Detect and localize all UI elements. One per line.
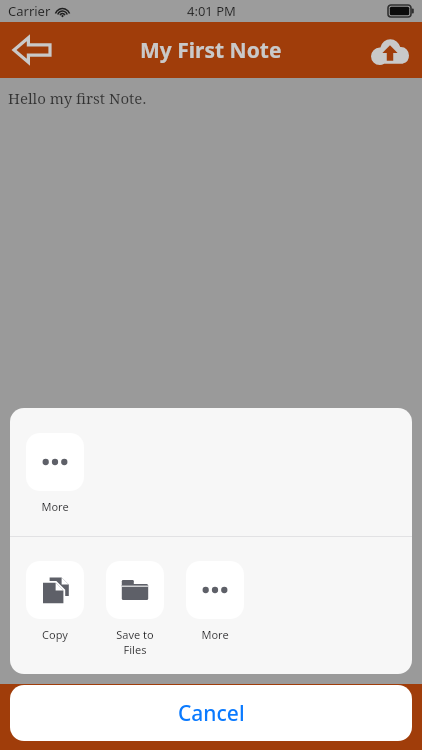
staticText: More [41,499,69,514]
button[interactable]: Copy [26,561,84,642]
staticText: Copy [42,627,68,642]
button[interactable]: Cancel [10,685,412,741]
staticText: Cancel [178,699,245,728]
button[interactable]: Upload [366,26,414,74]
button[interactable]: Save to Files [106,561,164,657]
staticText: 4:01 PM [187,2,236,20]
staticText: Hello my first Note. [8,88,147,108]
staticText: My First Note [140,36,282,65]
staticText: Carrier [8,2,51,20]
button[interactable]: Back [8,26,56,74]
staticText: More [201,627,229,642]
button[interactable]: More [186,561,244,642]
button[interactable]: More [26,433,84,514]
staticText: Save to Files [106,627,164,657]
